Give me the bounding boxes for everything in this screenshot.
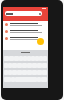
button[interactable] (3, 35, 48, 42)
button[interactable]: Compose (37, 38, 44, 45)
button[interactable] (3, 21, 48, 28)
button[interactable]: Clear (5, 11, 42, 16)
button[interactable] (3, 28, 48, 35)
